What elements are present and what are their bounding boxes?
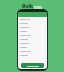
- staticText: SMS: [34, 5, 43, 10]
- button[interactable]: [18, 37, 47, 41]
- button[interactable]: [18, 25, 47, 29]
- button[interactable]: Contacts toolbar: [18, 12, 47, 17]
- button[interactable]: [18, 53, 47, 57]
- button[interactable]: [18, 49, 47, 53]
- button[interactable]: [18, 45, 47, 49]
- button[interactable]: Bulk: [20, 2, 45, 11]
- button[interactable]: [18, 21, 47, 25]
- button[interactable]: SEND SMS: [21, 63, 44, 68]
- button[interactable]: [18, 29, 47, 33]
- button[interactable]: [18, 17, 47, 21]
- button[interactable]: [18, 33, 47, 37]
- staticText: Bulk: [22, 3, 33, 10]
- button[interactable]: [18, 41, 47, 45]
- staticText: SEND SMS: [27, 64, 39, 67]
